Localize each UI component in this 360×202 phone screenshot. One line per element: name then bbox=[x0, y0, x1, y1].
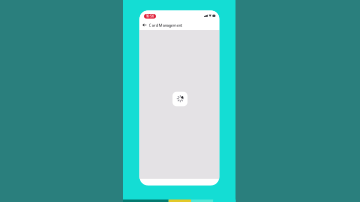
button[interactable]: Back bbox=[141, 22, 148, 28]
staticText: Card Management bbox=[149, 22, 182, 28]
staticText: 16:56 bbox=[146, 14, 154, 18]
